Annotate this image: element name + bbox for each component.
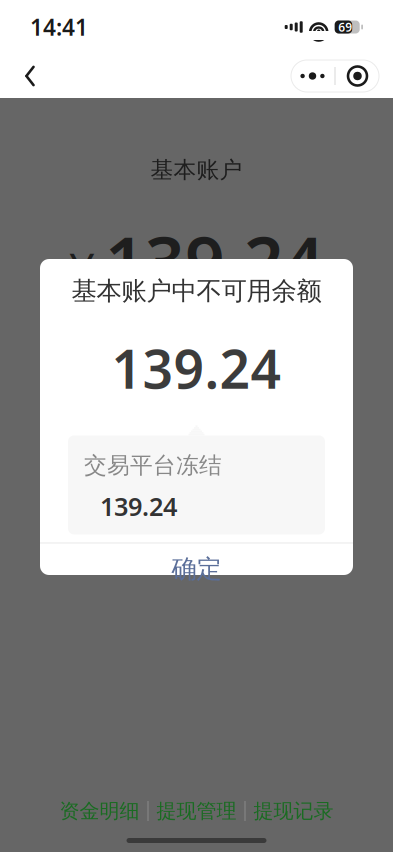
staticText: ¥ — [69, 239, 95, 299]
button[interactable]: Back — [8, 54, 52, 98]
staticText: 基本账户 — [150, 156, 242, 184]
staticText: 可用余额 — [79, 378, 163, 404]
staticText: 69 — [338, 19, 352, 35]
staticText: 139.24 — [111, 333, 281, 403]
staticText: 提现管理 — [156, 799, 236, 823]
button[interactable]: Close — [335, 60, 379, 92]
staticText: 基本账户中不可用余额 — [71, 275, 321, 307]
staticText: 不可用余额 — [219, 378, 324, 404]
staticText: 提现记录 — [253, 799, 333, 823]
staticText: 资金明细 — [59, 799, 139, 823]
staticText: 确定 — [171, 553, 221, 584]
button[interactable]: 确定 — [40, 543, 353, 594]
staticText: 14:41 — [30, 12, 88, 42]
staticText: 交易平台冻结 — [84, 451, 222, 479]
button[interactable]: 资金明细 — [51, 794, 147, 828]
button[interactable]: 提现管理 — [148, 794, 244, 828]
button[interactable]: 提现记录 — [245, 794, 341, 828]
staticText: 139.24 — [100, 489, 177, 523]
button[interactable]: More — [290, 60, 334, 92]
staticText: 139.24 — [105, 214, 324, 306]
